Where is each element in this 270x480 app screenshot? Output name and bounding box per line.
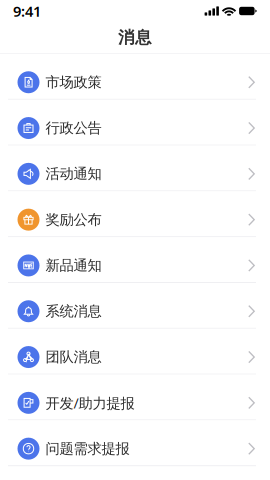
staticText: 团队消息 bbox=[45, 348, 101, 366]
staticText: 市场政策 bbox=[45, 73, 101, 91]
staticText: 问题需求提报 bbox=[45, 440, 129, 458]
button[interactable]: 新品通知 bbox=[0, 237, 270, 283]
staticText: 活动通知 bbox=[45, 165, 101, 183]
button[interactable]: 系统消息 bbox=[0, 283, 270, 329]
button[interactable]: 开发/助力提报 bbox=[0, 375, 270, 420]
staticText: 消息 bbox=[118, 27, 152, 48]
button[interactable]: 行政公告 bbox=[0, 100, 270, 146]
button[interactable]: 市场政策 bbox=[0, 54, 270, 100]
staticText: 新品通知 bbox=[45, 256, 101, 274]
staticText: 奖励公布 bbox=[45, 211, 101, 229]
button[interactable]: 奖励公布 bbox=[0, 191, 270, 237]
button[interactable]: 团队消息 bbox=[0, 329, 270, 375]
staticText: 行政公告 bbox=[45, 119, 101, 137]
staticText: 系统消息 bbox=[45, 302, 101, 320]
button[interactable]: 活动通知 bbox=[0, 146, 270, 191]
staticText: 9:41 bbox=[13, 1, 41, 21]
button[interactable]: 问题需求提报 bbox=[0, 420, 270, 466]
staticText: 开发/助力提报 bbox=[45, 393, 134, 412]
